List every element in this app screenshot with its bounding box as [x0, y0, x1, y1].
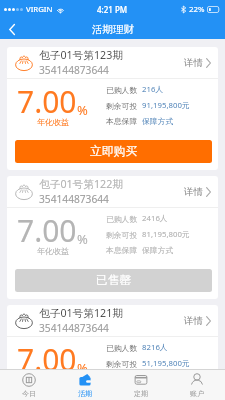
- staticText: 剩余可投: [106, 359, 138, 369]
- staticText: 4:21 PM: [97, 4, 128, 15]
- staticText: 保障方式: [142, 245, 174, 255]
- staticText: 354144873644: [39, 63, 109, 77]
- staticText: 包子01号第121期: [39, 306, 124, 321]
- staticText: 保障方式: [142, 374, 174, 384]
- staticText: %: [77, 359, 88, 377]
- staticText: 包子01号第123期: [39, 48, 124, 63]
- staticText: 81,195,800元: [142, 229, 190, 240]
- staticText: 51,195,800元: [142, 358, 190, 369]
- staticText: 已购人数: [106, 343, 138, 353]
- staticText: VIRGIN: [26, 4, 53, 15]
- staticText: 定期: [134, 389, 148, 398]
- staticText: 216人: [142, 84, 164, 95]
- button[interactable]: 活期: [57, 370, 113, 400]
- staticText: 账户: [190, 389, 204, 398]
- staticText: 剩余可投: [106, 101, 138, 111]
- staticText: 7.00: [17, 210, 77, 251]
- staticText: 今日: [22, 389, 36, 398]
- button[interactable]: 详情: [184, 57, 211, 69]
- button[interactable]: 立即购买: [15, 140, 212, 163]
- staticText: 354144873644: [39, 321, 109, 335]
- button[interactable]: 详情: [184, 315, 211, 327]
- button[interactable]: 已售罄: [15, 269, 212, 292]
- staticText: 年化收益: [37, 246, 69, 256]
- staticText: 91,195,800元: [142, 100, 190, 111]
- staticText: 8216人: [142, 342, 168, 353]
- button[interactable]: 账户: [169, 370, 225, 400]
- staticText: 本息保障: [106, 245, 138, 255]
- button[interactable]: 包子01号第122期: [7, 176, 218, 299]
- staticText: 剩余可投: [106, 230, 138, 240]
- staticText: 包子01号第122期: [39, 177, 124, 192]
- staticText: 354144873644: [39, 192, 109, 206]
- button[interactable]: 今日: [0, 370, 57, 400]
- staticText: %: [77, 230, 88, 248]
- staticText: 详情: [184, 57, 203, 69]
- staticText: 22%: [189, 4, 205, 15]
- staticText: 活期理财: [92, 23, 134, 36]
- staticText: 保障方式: [142, 116, 174, 126]
- staticText: 本息保障: [106, 116, 138, 126]
- staticText: 活期: [78, 389, 92, 398]
- staticText: 立即购买: [90, 144, 138, 159]
- button[interactable]: 详情: [184, 186, 211, 198]
- staticText: 已售罄: [96, 273, 132, 288]
- staticText: 已购人数: [106, 85, 138, 95]
- button[interactable]: Back: [0, 19, 24, 39]
- staticText: 本息保障: [106, 374, 138, 384]
- staticText: 7.00: [17, 81, 77, 122]
- staticText: 详情: [184, 186, 203, 198]
- staticText: 年化收益: [37, 117, 69, 127]
- staticText: %: [77, 101, 88, 119]
- staticText: 2416人: [142, 213, 168, 224]
- button[interactable]: 包子01号第123期: [7, 47, 218, 170]
- staticText: 7.00: [17, 339, 77, 380]
- button[interactable]: 定期: [113, 370, 169, 400]
- staticText: 已购人数: [106, 214, 138, 224]
- button[interactable]: 包子01号第121期: [7, 305, 218, 400]
- staticText: 详情: [184, 315, 203, 327]
